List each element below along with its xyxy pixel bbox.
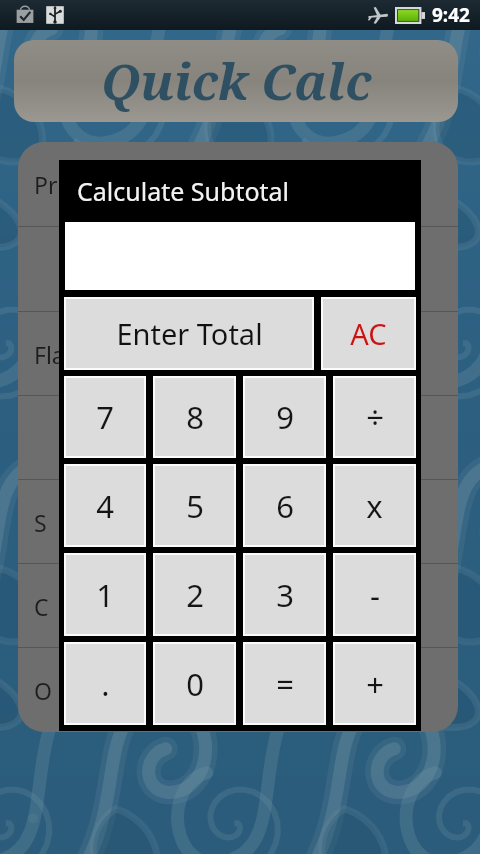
button[interactable]: AC (323, 299, 414, 368)
staticText: AC (350, 314, 387, 353)
staticText: = (276, 663, 294, 705)
button[interactable]: 7 (66, 378, 144, 456)
button[interactable]: ÷ (335, 378, 414, 456)
button[interactable]: Enter Total (66, 299, 312, 368)
staticText: 6 (276, 485, 294, 527)
button[interactable]: - (335, 555, 414, 634)
button[interactable]: x (335, 466, 414, 545)
button[interactable]: Quick Calc (14, 40, 458, 122)
button[interactable]: = (245, 644, 324, 723)
button[interactable]: + (335, 644, 414, 723)
button[interactable]: 5 (155, 466, 234, 545)
button[interactable]: 2 (155, 555, 234, 634)
staticText: 2 (186, 574, 204, 616)
button[interactable]: 6 (245, 466, 324, 545)
staticText: Price (34, 169, 88, 200)
staticText: - (370, 574, 380, 616)
staticText: x (366, 485, 383, 527)
staticText: O (34, 675, 52, 706)
button[interactable]: 9 (245, 378, 324, 456)
staticText: Flat (34, 339, 74, 370)
staticText: 5 (186, 485, 204, 527)
staticText: 8 (186, 396, 204, 438)
staticText: 1 (96, 574, 114, 616)
staticText: Calculate Subtotal (77, 174, 290, 208)
staticText: 9:42 (432, 2, 470, 28)
staticText: 7 (96, 396, 114, 438)
staticText: 0 (186, 663, 204, 705)
staticText: Enter Total (116, 314, 263, 353)
staticText: ÷ (366, 396, 384, 438)
staticText: C (34, 591, 49, 622)
button[interactable]: . (66, 644, 144, 723)
staticText: Quick Calc (101, 47, 372, 115)
button[interactable]: 1 (66, 555, 144, 634)
button[interactable]: 3 (245, 555, 324, 634)
staticText: S (34, 507, 47, 538)
staticText: 4 (96, 485, 114, 527)
staticText: 3 (276, 574, 294, 616)
button[interactable]: 0 (155, 644, 234, 723)
staticText: + (366, 663, 384, 705)
staticText: . (101, 663, 110, 705)
staticText: 9 (276, 396, 294, 438)
button[interactable]: 4 (66, 466, 144, 545)
button[interactable]: 8 (155, 378, 234, 456)
